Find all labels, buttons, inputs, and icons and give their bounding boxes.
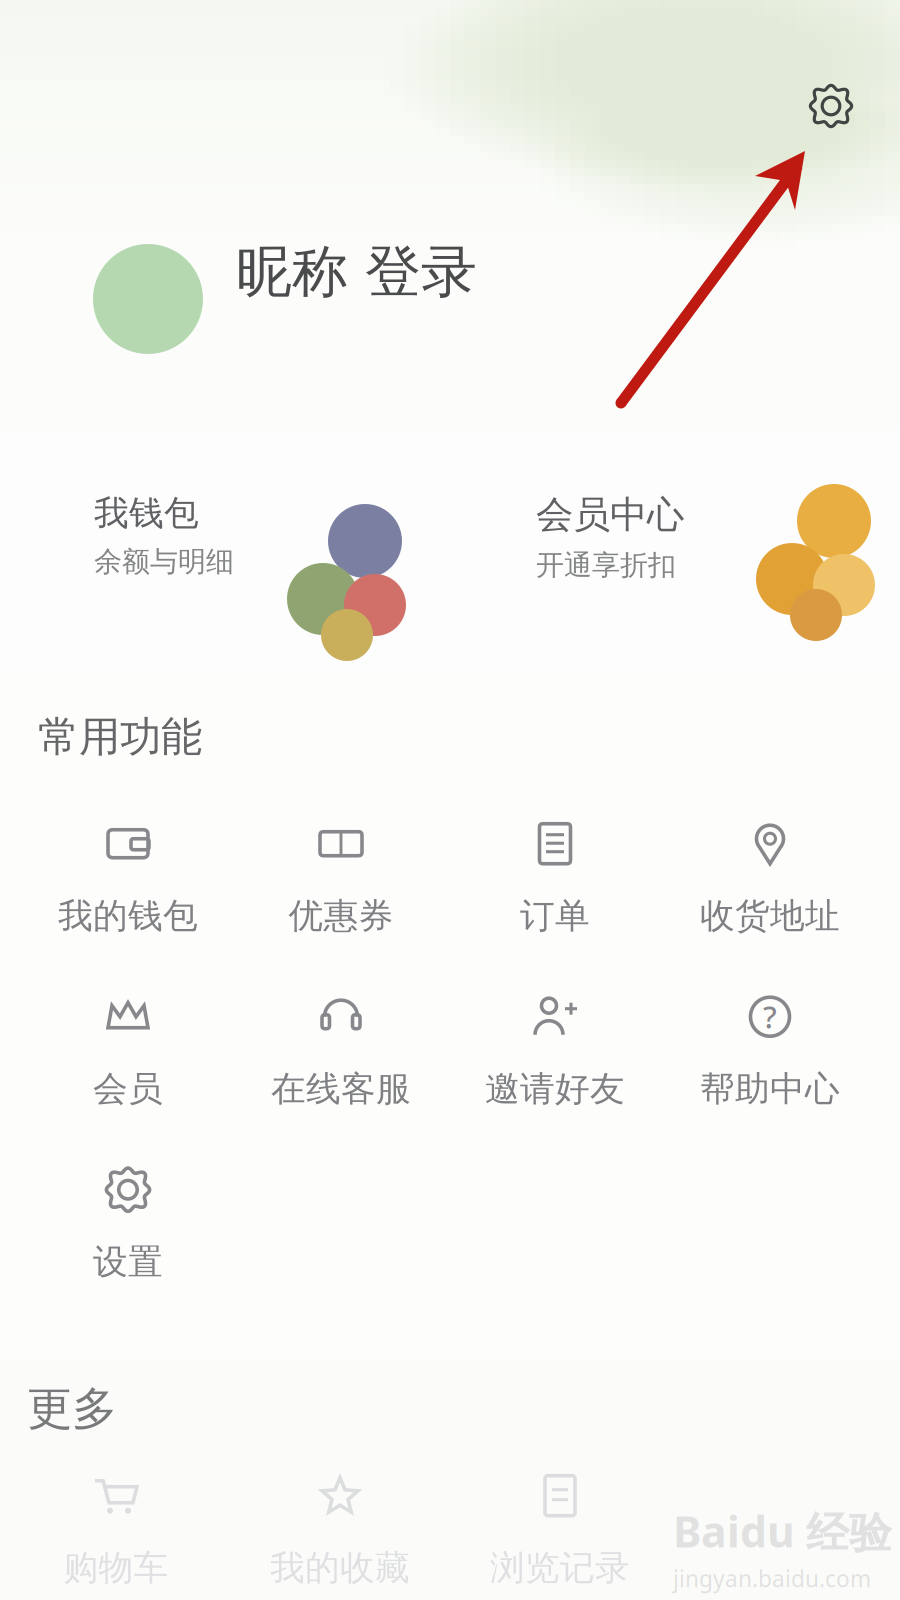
button[interactable]: 会员权益中心 <box>450 430 900 680</box>
button[interactable]: Settings <box>795 70 867 142</box>
staticText: 邀请好友 <box>485 1068 625 1110</box>
staticText: 余额与明细 <box>94 545 234 579</box>
staticText: 我钱包 <box>94 492 199 535</box>
button[interactable]: 我的钱包 <box>0 430 450 680</box>
staticText: 帮助中心 <box>700 1068 840 1110</box>
staticText: 我的钱包 <box>58 895 198 937</box>
staticText: 开通享折扣 <box>536 548 676 582</box>
button[interactable]: 浏览记录 <box>460 1466 660 1594</box>
staticText: 在线客服 <box>271 1068 411 1110</box>
staticText: 昵称 登录 <box>236 238 477 306</box>
button[interactable]: 购物车 <box>16 1466 216 1594</box>
staticText: 常用功能 <box>38 712 202 762</box>
button[interactable]: 收货地址 <box>670 814 870 942</box>
button[interactable]: 优惠券 <box>241 814 441 942</box>
button[interactable]: 在线客服 <box>241 987 441 1115</box>
staticText: 更多 <box>27 1381 117 1437</box>
button[interactable]: ? <box>670 987 870 1115</box>
staticText: Baidu 经验 <box>673 1502 892 1559</box>
staticText: jingyan.baidu.com <box>673 1563 871 1593</box>
staticText: 优惠券 <box>288 895 393 937</box>
staticText: 收货地址 <box>700 895 840 937</box>
button[interactable]: 我的收藏 <box>240 1466 440 1594</box>
staticText: 设置 <box>93 1241 163 1283</box>
staticText: 我的收藏 <box>270 1547 410 1589</box>
staticText: 会员 <box>93 1068 163 1110</box>
button[interactable]: 设置 <box>28 1160 228 1288</box>
staticText: 订单 <box>520 895 590 937</box>
button[interactable]: 会员 <box>28 987 228 1115</box>
button[interactable]: 用户昵称 <box>0 199 900 399</box>
staticText: ? <box>763 996 777 1037</box>
staticText: 会员中心 <box>536 492 684 538</box>
staticText: 浏览记录 <box>490 1547 630 1589</box>
staticText: 购物车 <box>63 1547 168 1589</box>
button[interactable]: 邀请好友 <box>455 987 655 1115</box>
button[interactable]: 订单 <box>455 814 655 942</box>
button[interactable]: 我的钱包 <box>28 814 228 942</box>
